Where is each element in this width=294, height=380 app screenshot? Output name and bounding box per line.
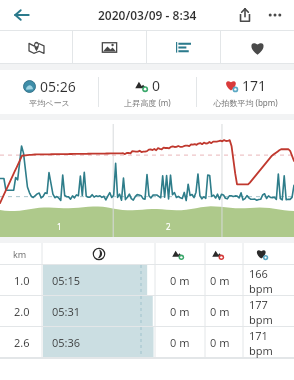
- button[interactable]: More options: [260, 0, 290, 30]
- staticText: 0 m: [210, 335, 230, 350]
- staticText: 2.6: [14, 335, 30, 350]
- button[interactable]: 2.6: [0, 327, 294, 358]
- staticText: 1.0: [14, 273, 30, 288]
- button[interactable]: Photos: [73, 31, 146, 63]
- button[interactable]: 0: [99, 70, 196, 114]
- button[interactable]: Back: [6, 0, 38, 30]
- button[interactable]: 171: [197, 70, 294, 114]
- staticText: 0 m: [170, 273, 190, 288]
- staticText: 0 m: [170, 304, 190, 319]
- staticText: 上昇高度 (m): [124, 97, 171, 108]
- staticText: 05:36: [52, 335, 81, 350]
- staticText: 2.0: [14, 304, 30, 319]
- button[interactable]: Map: [0, 31, 72, 63]
- staticText: km: [13, 248, 27, 260]
- staticText: 2020/03/09 - 8:34: [98, 7, 197, 23]
- staticText: 0 m: [210, 273, 230, 288]
- staticText: 05:26: [40, 77, 76, 96]
- staticText: 171: [242, 76, 267, 95]
- staticText: 171 bpm: [249, 328, 294, 358]
- staticText: 0 m: [170, 335, 190, 350]
- staticText: 2: [166, 221, 171, 232]
- staticText: 05:31: [52, 304, 81, 319]
- staticText: 平均ペース: [29, 98, 70, 108]
- button[interactable]: Statistics: [147, 31, 220, 63]
- button[interactable]: Heart rate: [221, 31, 294, 63]
- button[interactable]: 05:26: [0, 70, 98, 114]
- staticText: 0: [152, 76, 161, 95]
- staticText: 心拍数平均 (bpm): [213, 97, 278, 108]
- staticText: 1: [57, 221, 62, 232]
- staticText: 177 bpm: [249, 297, 294, 327]
- staticText: 166 bpm: [249, 266, 294, 296]
- button[interactable]: Share: [230, 0, 260, 30]
- button[interactable]: 1.0: [0, 265, 294, 296]
- staticText: 0 m: [210, 304, 230, 319]
- staticText: 05:15: [52, 273, 81, 288]
- button[interactable]: 2.0: [0, 296, 294, 327]
